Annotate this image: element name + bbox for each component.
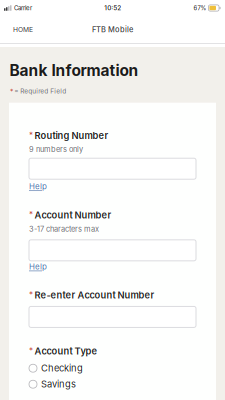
staticText: * <box>29 346 33 355</box>
staticText: Savings <box>41 379 76 390</box>
staticText: Account Type <box>34 346 97 357</box>
staticText: Help <box>29 262 47 271</box>
button[interactable]: Checking <box>29 364 196 373</box>
staticText: = Required Field <box>14 87 66 95</box>
button[interactable] <box>29 240 196 261</box>
staticText: * <box>29 130 33 140</box>
staticText: Help <box>29 181 47 191</box>
staticText: HOME <box>13 25 33 34</box>
staticText: FTB Mobile <box>92 25 133 34</box>
button[interactable]: Help <box>29 263 47 271</box>
staticText: Checking <box>41 363 83 374</box>
staticText: Routing Number <box>34 130 108 141</box>
staticText: Bank Information <box>10 61 139 80</box>
staticText: Account Number <box>34 209 111 221</box>
staticText: 3-17 characters max <box>29 224 99 233</box>
button[interactable] <box>29 306 196 327</box>
staticText: 67% <box>193 4 206 12</box>
staticText: 10:52 <box>104 4 121 12</box>
staticText: * <box>29 290 33 299</box>
staticText: Carrier <box>14 4 32 12</box>
button[interactable] <box>29 158 196 179</box>
button[interactable]: Savings <box>29 380 196 389</box>
staticText: 9 numbers only <box>29 145 83 154</box>
staticText: * <box>10 87 13 95</box>
staticText: * <box>29 209 33 219</box>
button[interactable]: Help <box>29 183 47 191</box>
staticText: Re-enter Account Number <box>34 290 154 301</box>
button[interactable]: HOME <box>5 19 41 40</box>
